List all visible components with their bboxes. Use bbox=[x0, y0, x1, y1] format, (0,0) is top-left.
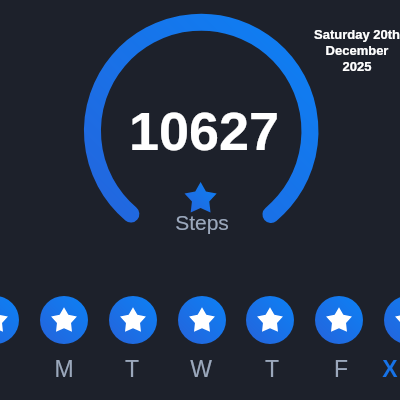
button[interactable]: Day M bbox=[40, 296, 88, 344]
button[interactable]: Day T bbox=[109, 296, 157, 344]
staticText: Steps bbox=[152, 211, 252, 241]
staticText: W bbox=[181, 356, 221, 382]
staticText: M bbox=[44, 356, 84, 382]
staticText: 10627 bbox=[104, 101, 304, 165]
staticText: T bbox=[252, 356, 292, 382]
button[interactable]: Day F bbox=[315, 296, 363, 344]
button[interactable]: Day S bbox=[0, 296, 19, 344]
staticText: F bbox=[321, 356, 361, 382]
button[interactable]: Day W bbox=[178, 296, 226, 344]
staticText: X bbox=[370, 356, 400, 382]
button[interactable]: Day X bbox=[384, 296, 400, 344]
staticText: Saturday 20th December 2025 bbox=[297, 27, 400, 87]
button[interactable]: Day T bbox=[246, 296, 294, 344]
staticText: T bbox=[112, 356, 152, 382]
